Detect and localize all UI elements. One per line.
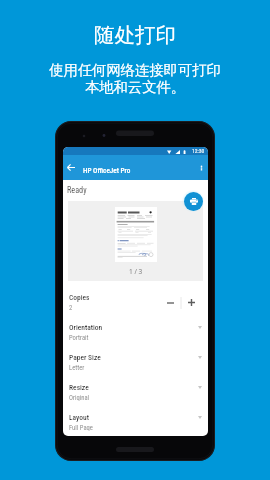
- button[interactable]: Increase copies: [185, 296, 198, 309]
- button[interactable]: Resize: [63, 371, 208, 401]
- staticText: HP OfficeJet Pro: [83, 166, 131, 174]
- staticText: Full Page: [69, 424, 93, 431]
- staticText: Paper Size: [69, 353, 101, 362]
- staticText: 随处打印: [94, 22, 176, 48]
- staticText: Original: [69, 394, 90, 401]
- button[interactable]: More options: [195, 161, 208, 174]
- staticText: Resize: [69, 383, 89, 392]
- button[interactable]: Layout: [63, 401, 208, 431]
- staticText: Portrait: [69, 334, 89, 341]
- staticText: Layout: [69, 413, 89, 422]
- staticText: 1 / 3: [129, 267, 143, 276]
- staticText: Ready: [67, 185, 87, 195]
- staticText: 使用任何网络连接即可打印 本地和云文件。: [49, 61, 221, 97]
- button[interactable]: Decrease copies: [164, 296, 177, 309]
- button[interactable]: Orientation: [63, 311, 208, 341]
- staticText: 12:30: [192, 148, 205, 155]
- staticText: 2: [69, 304, 73, 311]
- button[interactable]: Back: [64, 160, 78, 174]
- staticText: Letter: [69, 364, 85, 371]
- staticText: Copies: [69, 293, 90, 302]
- button[interactable]: Copies: [63, 281, 208, 311]
- button[interactable]: Paper Size: [63, 341, 208, 371]
- staticText: Orientation: [69, 323, 103, 332]
- button[interactable]: Print: [184, 192, 203, 211]
